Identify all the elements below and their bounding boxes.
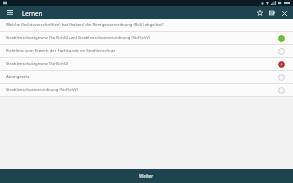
staticText: Richtlinie zum Erwerb der Fachkunde im S…	[6, 48, 116, 54]
staticText: Weiter	[139, 173, 154, 179]
staticText: Welche Rechtsvorschrift(en) hat (haben) …	[6, 22, 164, 28]
button[interactable]: Weiter	[0, 169, 293, 183]
button[interactable]: Strahlenschutzgesetz (StrlSchG)	[0, 58, 293, 70]
button[interactable]: Close	[278, 7, 290, 19]
staticText: Lernen	[22, 9, 43, 17]
button[interactable]: Favorite	[254, 7, 266, 19]
staticText: Strahlenschutzgesetz (StrlSchG)	[6, 61, 69, 67]
button[interactable]: Strahlenschutzgesetz (StrlSchG) und Stra…	[0, 32, 293, 44]
button[interactable]: Menu	[4, 7, 15, 18]
staticText: Strahlenschutzverordnung (StrlSchV)	[6, 87, 78, 93]
staticText: Atomgesetz	[6, 74, 30, 80]
button[interactable]: Strahlenschutzverordnung (StrlSchV)	[0, 84, 293, 96]
button[interactable]: Atomgesetz	[0, 71, 293, 83]
button[interactable]: Notes	[266, 7, 278, 19]
button[interactable]: Richtlinie zum Erwerb der Fachkunde im S…	[0, 45, 293, 57]
staticText: Strahlenschutzgesetz (StrlSchG) und Stra…	[6, 35, 150, 41]
